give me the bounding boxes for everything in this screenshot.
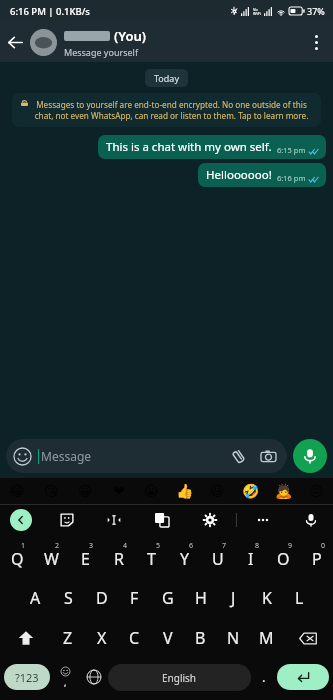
staticText: B — [195, 627, 206, 649]
staticText: 8 — [255, 541, 260, 551]
staticText: G — [162, 587, 174, 609]
staticText: English — [162, 671, 197, 685]
button[interactable]: 4 — [102, 536, 135, 578]
button[interactable]: X — [85, 618, 118, 658]
button[interactable]: Today — [154, 72, 179, 84]
button[interactable]: Message — [14, 439, 279, 473]
button[interactable]: Profile photo — [30, 29, 57, 56]
staticText: This is a chat with my own self. — [106, 139, 272, 155]
button[interactable]: C — [118, 618, 151, 658]
button[interactable]: Voice input — [299, 508, 323, 532]
staticText: U — [212, 548, 224, 570]
button[interactable]: Enter — [277, 664, 329, 690]
staticText: 4 — [123, 541, 128, 551]
button[interactable]: Z — [51, 618, 85, 658]
button[interactable]: M — [250, 618, 283, 658]
button[interactable]: English — [108, 664, 251, 691]
staticText: E — [81, 548, 90, 570]
button[interactable]: Settings — [198, 508, 222, 532]
staticText: 9 — [288, 541, 293, 551]
button[interactable]: 5 — [135, 536, 168, 578]
staticText: ?123 — [15, 670, 39, 685]
staticText: ❤️ — [113, 483, 125, 499]
button[interactable]: Messages to yourself are end-to-end encr… — [21, 99, 312, 121]
button[interactable]: 6 — [168, 536, 201, 578]
button[interactable]: More options — [299, 25, 333, 59]
staticText: 6:16 pm — [277, 173, 306, 183]
button[interactable]: . — [251, 658, 277, 696]
staticText: O — [277, 548, 290, 570]
button[interactable]: G — [151, 578, 184, 618]
staticText: 6 — [189, 541, 194, 551]
button[interactable]: A — [18, 578, 52, 618]
button[interactable]: Emoji — [50, 658, 80, 696]
staticText: Z — [63, 627, 73, 649]
staticText: , — [64, 676, 67, 688]
staticText: S — [64, 587, 73, 609]
button[interactable]: 7 — [201, 536, 234, 578]
button[interactable]: S — [52, 578, 85, 618]
staticText: T — [147, 548, 156, 570]
button[interactable]: Text editing — [102, 508, 126, 532]
button[interactable]: 2 — [34, 536, 68, 578]
button[interactable]: F — [118, 578, 151, 618]
button[interactable]: More — [251, 508, 275, 532]
button[interactable]: This is a chat with my own self. — [106, 139, 320, 155]
staticText: 2 — [55, 541, 60, 551]
staticText: 6:16 PM | 0.1KB/s — [10, 5, 90, 18]
button[interactable]: Shift — [0, 618, 51, 658]
staticText: Message — [41, 448, 92, 464]
button[interactable]: 0 — [300, 536, 333, 578]
staticText: I — [248, 548, 254, 570]
staticText: Message yourself — [64, 46, 138, 58]
button[interactable]: 3 — [68, 536, 102, 578]
button[interactable]: Back — [0, 27, 30, 57]
staticText: 1 — [21, 541, 26, 551]
button[interactable]: Change language — [80, 658, 108, 696]
button[interactable]: Translate — [150, 508, 174, 532]
staticText: X — [97, 627, 107, 649]
staticText: N — [227, 627, 240, 649]
button[interactable]: Expand toolbar — [10, 509, 32, 531]
button[interactable]: Helloooooo! — [206, 167, 320, 183]
button[interactable]: 1 — [0, 536, 34, 578]
staticText: V — [163, 627, 173, 649]
button[interactable]: L — [283, 578, 316, 618]
button[interactable]: H — [184, 578, 217, 618]
staticText: Vo WiFi — [253, 7, 261, 16]
button[interactable]: D — [85, 578, 118, 618]
button[interactable]: Backspace — [283, 618, 333, 658]
staticText: W — [44, 548, 59, 570]
button[interactable]: ?123 — [4, 664, 50, 690]
button[interactable]: 🤣 — [234, 478, 267, 504]
staticText: P — [312, 548, 322, 570]
staticText: K — [262, 587, 272, 609]
button[interactable]: 👍 — [168, 478, 201, 504]
button[interactable]: B — [184, 618, 217, 658]
staticText: F — [130, 587, 139, 609]
button[interactable]: V — [151, 618, 184, 658]
staticText: 0 — [321, 541, 326, 551]
button[interactable]: Stickers — [55, 508, 79, 532]
staticText: R — [114, 548, 124, 570]
button[interactable]: J — [217, 578, 250, 618]
button[interactable]: N — [217, 618, 250, 658]
button[interactable]: 🙇 — [267, 478, 300, 504]
button[interactable]: 9 — [267, 536, 300, 578]
button[interactable]: Camera — [257, 445, 279, 467]
button[interactable]: (You) — [64, 27, 299, 58]
button[interactable]: 8 — [234, 536, 267, 578]
button[interactable]: K — [250, 578, 283, 618]
button[interactable]: Attach — [227, 445, 249, 467]
staticText: . — [262, 668, 266, 686]
button[interactable]: Voice message — [293, 439, 327, 473]
staticText: D — [96, 587, 108, 609]
